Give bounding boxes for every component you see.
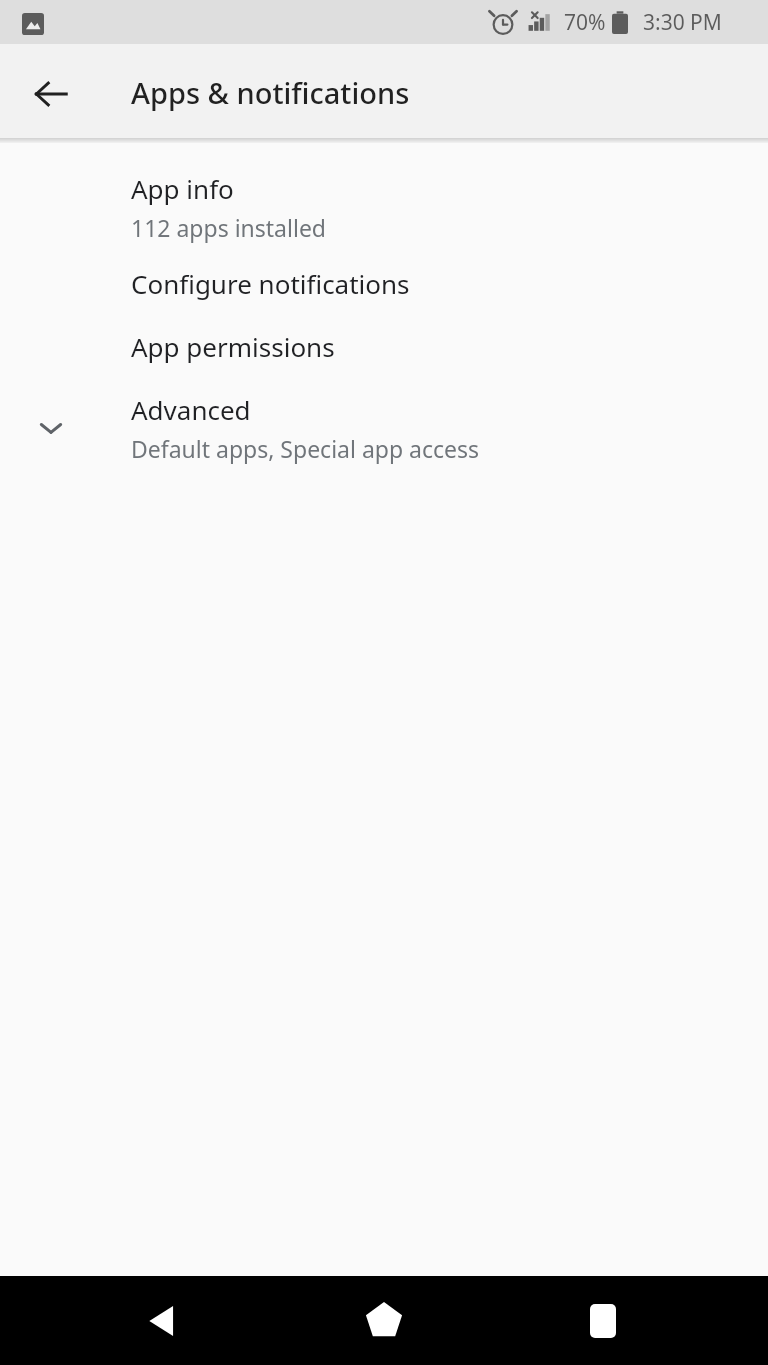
staticText: Advanced [131,392,251,427]
staticText: 112 apps installed [131,212,326,243]
staticText: App permissions [131,329,335,364]
staticText: 70% [564,8,606,37]
button[interactable]: App permissions [0,315,768,378]
button[interactable]: Back [19,62,83,126]
button[interactable]: Advanced [0,378,768,478]
button[interactable]: Configure notifications [0,252,768,315]
staticText: App info [131,171,234,206]
button[interactable]: Recent apps [563,1281,643,1361]
staticText: Apps & notifications [131,73,410,112]
staticText: 3:30 PM [643,8,722,37]
button[interactable]: Back [123,1281,203,1361]
staticText: Configure notifications [131,266,410,301]
button[interactable]: App info [0,162,768,252]
staticText: Default apps, Special app access [131,433,480,464]
button[interactable]: Home [344,1281,424,1361]
